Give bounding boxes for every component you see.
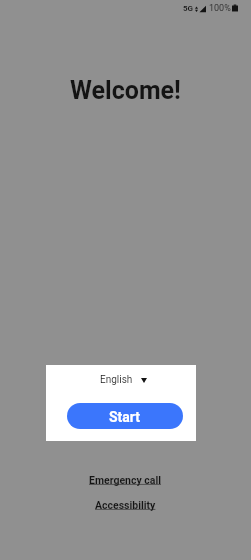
button[interactable]: English [99, 372, 148, 388]
staticText: Accessibility [95, 499, 156, 511]
button[interactable]: Accessibility [92, 498, 159, 512]
staticText: 5G [183, 4, 194, 13]
other: Battery full [232, 4, 238, 13]
staticText: English [100, 374, 133, 386]
button[interactable]: Emergency call [86, 473, 165, 487]
staticText: Emergency call [89, 474, 162, 486]
staticText: 100% [209, 3, 231, 14]
staticText: Start [109, 409, 141, 425]
staticText: Welcome! [0, 76, 251, 105]
other: Mobile signal strength [199, 5, 206, 13]
button[interactable]: Start [67, 403, 183, 429]
